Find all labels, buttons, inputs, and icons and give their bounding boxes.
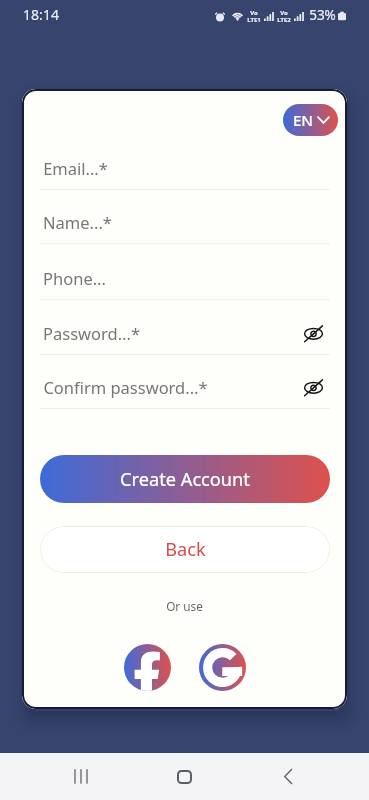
staticText: Password...*: [43, 322, 140, 344]
staticText: Name...*: [43, 211, 112, 233]
button[interactable]: Sign in with Google: [199, 644, 246, 691]
staticText: Phone...: [43, 267, 106, 289]
staticText: 18:14: [23, 5, 59, 24]
button[interactable]: Recents: [57, 753, 105, 800]
staticText: Vo: [250, 9, 258, 17]
staticText: 53%: [309, 6, 336, 24]
button[interactable]: Toggle password visibility: [298, 318, 328, 348]
button[interactable]: Toggle password visibility: [298, 372, 328, 402]
staticText: LTE1: [247, 16, 261, 24]
staticText: Vo: [280, 9, 288, 17]
button[interactable]: Language EN: [283, 104, 338, 136]
button[interactable]: Back: [264, 753, 312, 800]
staticText: Back: [165, 537, 206, 562]
staticText: EN: [293, 110, 313, 130]
button[interactable]: Sign in with Facebook: [124, 644, 171, 691]
staticText: Create Account: [120, 467, 250, 492]
staticText: Confirm password...*: [43, 376, 208, 398]
staticText: Or use: [166, 598, 203, 614]
button[interactable]: Home: [160, 753, 208, 800]
button[interactable]: Create Account: [40, 455, 330, 503]
staticText: Email...*: [43, 157, 108, 179]
button[interactable]: Back: [40, 526, 330, 573]
staticText: LTE2: [277, 16, 291, 24]
